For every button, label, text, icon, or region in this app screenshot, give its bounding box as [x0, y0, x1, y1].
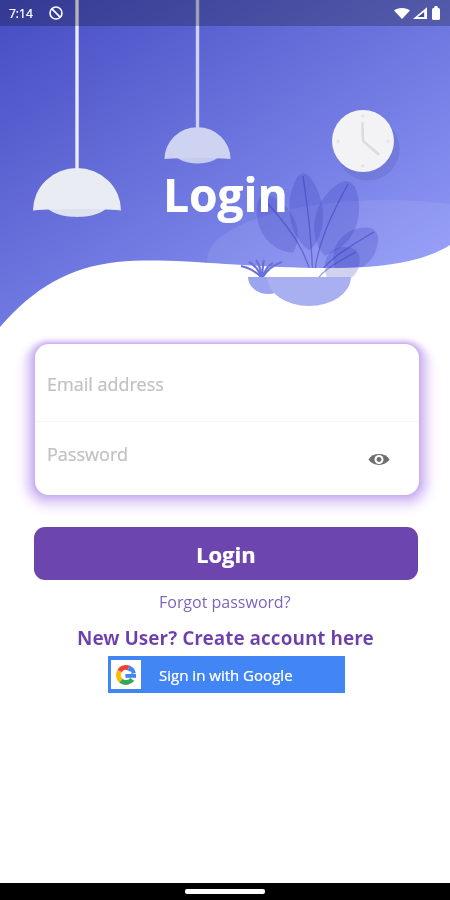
button[interactable]: Login: [34, 527, 418, 580]
staticText: Password: [47, 442, 128, 467]
staticText: 7:14: [9, 5, 33, 21]
button[interactable]: New User? Create account here: [69, 623, 382, 653]
button[interactable]: Forgot password?: [151, 589, 299, 615]
button[interactable]: Sign in with Google: [108, 656, 345, 693]
staticText: Sign in with Google: [159, 665, 293, 685]
staticText: Email address: [47, 372, 164, 397]
button[interactable]: Show password: [367, 447, 391, 471]
button[interactable]: Email address: [35, 344, 419, 421]
staticText: Login: [163, 163, 288, 226]
staticText: Login: [196, 539, 256, 569]
staticText: Forgot password?: [159, 591, 291, 613]
button[interactable]: Password: [35, 422, 419, 495]
staticText: New User? Create account here: [77, 625, 374, 651]
